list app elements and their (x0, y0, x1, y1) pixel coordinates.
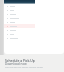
button[interactable] (4, 24, 35, 28)
staticText: Get the app for faster service today (5, 66, 44, 69)
button[interactable] (4, 0, 35, 4)
button[interactable] (4, 16, 35, 20)
staticText: Download now (5, 62, 27, 66)
button[interactable] (4, 32, 35, 36)
staticText: Schedule a Pick-Up (5, 58, 35, 62)
button[interactable] (4, 36, 35, 40)
button[interactable] (4, 4, 35, 8)
button[interactable] (4, 12, 35, 16)
button[interactable] (4, 20, 35, 24)
button[interactable] (4, 8, 35, 12)
button[interactable] (4, 28, 35, 32)
